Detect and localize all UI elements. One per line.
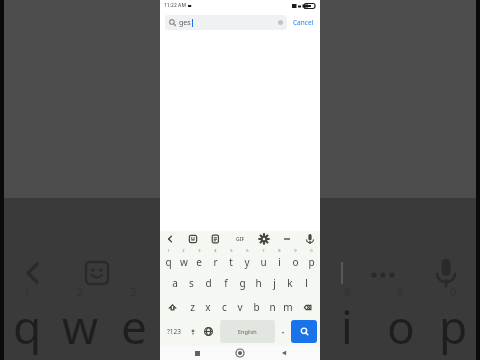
button[interactable]: 3 [191, 247, 207, 271]
staticText: w [62, 295, 99, 358]
staticText: d [205, 276, 212, 290]
staticText: w [180, 255, 188, 269]
button[interactable]: 8 [271, 247, 287, 271]
staticText: e [196, 255, 202, 269]
button[interactable]: Back [163, 232, 177, 246]
staticText: g [239, 276, 246, 290]
button[interactable]: b [248, 295, 264, 319]
button[interactable]: 6 [239, 247, 255, 271]
staticText: z [190, 300, 195, 314]
button[interactable]: 2 [176, 247, 191, 271]
staticText: o [292, 255, 299, 269]
staticText: n [269, 300, 276, 314]
button[interactable]: f [217, 271, 234, 295]
button[interactable]: l [298, 271, 314, 295]
button[interactable]: 1 [161, 247, 176, 271]
button[interactable]: Back [277, 346, 291, 360]
staticText: r [213, 255, 218, 269]
button[interactable]: Clipboard [209, 232, 223, 246]
staticText: t [229, 255, 233, 269]
button[interactable]: ?123 [162, 320, 186, 343]
staticText: 8 [278, 248, 281, 253]
button[interactable]: GIF [232, 232, 248, 246]
staticText: 9 [294, 248, 297, 253]
staticText: 2 [182, 248, 185, 253]
button[interactable]: 9 [287, 247, 303, 271]
button[interactable]: z [184, 295, 200, 319]
button[interactable]: d [200, 271, 217, 295]
staticText: k [287, 276, 293, 290]
button[interactable]: Home [233, 346, 247, 360]
button[interactable]: k [282, 271, 298, 295]
button[interactable]: More options [280, 232, 294, 246]
staticText: p [308, 255, 315, 269]
staticText: l [305, 276, 308, 290]
button[interactable]: 0 [303, 247, 319, 271]
button[interactable]: 7 [255, 247, 271, 271]
button[interactable]: Shift [161, 295, 184, 319]
staticText: h [255, 276, 262, 290]
button[interactable]: Stickers [186, 232, 200, 246]
button[interactable]: s [183, 271, 200, 295]
staticText: 0 [310, 248, 313, 253]
staticText: b [253, 300, 260, 314]
button[interactable]: 4 [207, 247, 223, 271]
other: Search [169, 19, 176, 26]
button[interactable]: c [216, 295, 232, 319]
button[interactable]: a [166, 271, 183, 295]
button[interactable]: x [200, 295, 216, 319]
staticText: m [283, 300, 293, 314]
staticText: English [238, 328, 257, 335]
button[interactable]: Settings [257, 232, 271, 246]
staticText: Cancel [293, 18, 314, 27]
button[interactable]: h [250, 271, 266, 295]
button[interactable]: English [220, 320, 275, 343]
button[interactable]: Backspace [296, 295, 319, 319]
staticText: f [224, 276, 228, 290]
staticText: s [189, 276, 194, 290]
button[interactable]: g [234, 271, 250, 295]
staticText: i [278, 255, 281, 269]
button[interactable] [277, 320, 289, 343]
button[interactable]: Voice input [303, 232, 317, 246]
button[interactable]: m [280, 295, 296, 319]
button[interactable] [187, 320, 199, 343]
button[interactable]: 5 [223, 247, 239, 271]
button[interactable]: Search [165, 15, 287, 30]
staticText: v [237, 300, 243, 314]
staticText: i [341, 295, 353, 358]
staticText: 11:22 AM [164, 2, 186, 9]
staticText: q [13, 295, 42, 358]
staticText: c [222, 300, 227, 314]
staticText: j [273, 276, 276, 290]
button[interactable]: j [266, 271, 282, 295]
staticText: 4 [214, 248, 217, 253]
button[interactable]: Recents [190, 346, 204, 360]
staticText: u [260, 255, 267, 269]
button[interactable]: Change language [199, 320, 218, 343]
button[interactable]: n [264, 295, 280, 319]
other: Clear [278, 20, 283, 25]
staticText: a [172, 276, 178, 290]
staticText: y [244, 255, 250, 269]
staticText: ges [179, 18, 191, 28]
staticText: 3 [198, 248, 201, 253]
staticText: 5 [230, 248, 233, 253]
staticText: e [121, 295, 147, 358]
button[interactable]: Search [291, 320, 317, 343]
button[interactable]: v [232, 295, 248, 319]
staticText: 7 [262, 248, 265, 253]
staticText: GIF [236, 236, 245, 243]
button[interactable]: Cancel [292, 16, 315, 29]
staticText: ?123 [167, 327, 181, 336]
staticText: x [205, 300, 211, 314]
staticText: p [439, 295, 468, 358]
staticText: 1 [167, 248, 170, 253]
staticText: 6 [246, 248, 249, 253]
